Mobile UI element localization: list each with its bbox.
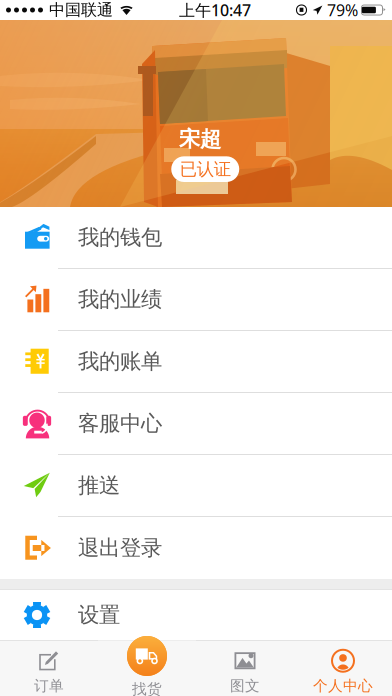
- staticText: 退出登录: [78, 535, 162, 561]
- button[interactable]: 找货: [98, 634, 196, 696]
- staticText: 客服中心: [78, 410, 162, 437]
- button[interactable]: Orders: [0, 640, 98, 696]
- button[interactable]: Media: [196, 640, 294, 696]
- button[interactable]: 我的业绩: [0, 269, 392, 331]
- staticText: 宋超: [179, 126, 221, 152]
- staticText: 中国联通: [49, 0, 113, 20]
- staticText: 推送: [78, 472, 120, 499]
- button[interactable]: 我的钱包: [0, 207, 392, 269]
- staticText: 个人中心: [313, 677, 373, 695]
- staticText: 找货: [132, 680, 162, 696]
- staticText: 我的钱包: [78, 224, 162, 251]
- button[interactable]: 退出登录: [0, 517, 392, 579]
- staticText: 已认证: [180, 158, 231, 180]
- button[interactable]: 推送: [0, 455, 392, 517]
- staticText: 订单: [34, 677, 64, 695]
- button[interactable]: 客服中心: [0, 393, 392, 455]
- staticText: 图文: [230, 677, 260, 695]
- staticText: 设置: [78, 602, 120, 628]
- staticText: 上午10:47: [179, 0, 251, 21]
- staticText: 我的业绩: [78, 286, 162, 313]
- button[interactable]: 我的账单: [0, 331, 392, 393]
- staticText: 79%: [327, 0, 358, 21]
- button[interactable]: 设置: [0, 590, 392, 640]
- button[interactable]: Profile: [294, 640, 392, 696]
- staticText: 我的账单: [78, 348, 162, 375]
